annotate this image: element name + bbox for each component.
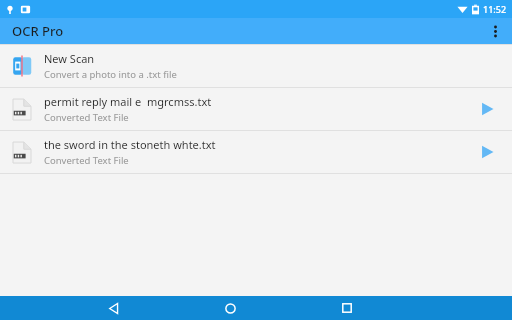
staticText: New Scan xyxy=(44,51,95,66)
button[interactable]: Recent apps xyxy=(327,296,367,320)
button[interactable]: Send xyxy=(472,94,502,124)
button[interactable]: New Scan xyxy=(0,45,512,87)
staticText: Converted Text File xyxy=(44,111,129,124)
button[interactable]: Back xyxy=(93,296,133,320)
button[interactable]: More options xyxy=(478,18,512,44)
staticText: the sword in the stoneth whte.txt xyxy=(44,137,216,152)
button[interactable]: permit reply mail e mgrcmss.txt xyxy=(0,88,512,130)
button[interactable]: Send xyxy=(472,137,502,167)
staticText: 11:52 xyxy=(483,3,507,15)
staticText: Convert a photo into a .txt file xyxy=(44,68,177,81)
staticText: OCR Pro xyxy=(12,22,64,40)
staticText: permit reply mail e mgrcmss.txt xyxy=(44,94,212,109)
staticText: Converted Text File xyxy=(44,154,129,167)
button[interactable]: the sword in the stoneth whte.txt xyxy=(0,131,512,173)
button[interactable]: Home xyxy=(210,296,250,320)
